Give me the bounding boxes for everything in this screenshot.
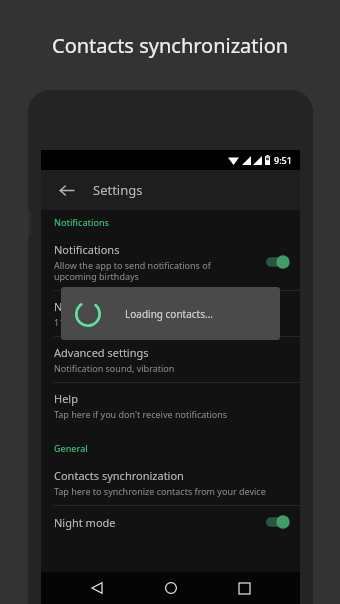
staticText: Notification sound, vibration <box>54 362 175 374</box>
staticText: Loading contacts… <box>125 307 213 321</box>
staticText: Notifications <box>54 242 120 257</box>
staticText: Night mode <box>54 515 116 530</box>
button[interactable]: Home <box>154 572 188 604</box>
staticText: Contacts synchronization <box>52 32 289 59</box>
staticText: General <box>54 442 88 454</box>
staticText: 9:51 <box>274 154 292 166</box>
staticText: Notifications <box>54 216 109 228</box>
staticText: Advanced settings <box>54 345 149 360</box>
staticText: Allow the app to send notifications of u… <box>54 259 211 282</box>
button[interactable]: Navigate up <box>53 177 79 203</box>
staticText: Settings <box>93 181 143 199</box>
button[interactable]: Contacts synchronization <box>41 460 300 505</box>
staticText: Notification time <box>54 299 141 314</box>
button[interactable] <box>264 254 290 270</box>
staticText: Tap here to synchronize contacts from yo… <box>54 485 266 497</box>
button[interactable]: Night mode <box>41 506 300 538</box>
button[interactable]: Notifications <box>41 234 300 290</box>
staticText: Tap here if you don't receive notificati… <box>54 408 228 420</box>
button[interactable]: Recent apps <box>227 572 261 604</box>
button[interactable]: Back <box>80 572 114 604</box>
button[interactable]: Advanced settings <box>41 337 300 382</box>
button[interactable]: Notification time <box>41 291 300 336</box>
button[interactable]: Help <box>41 383 300 428</box>
staticText: Contacts synchronization <box>54 468 184 483</box>
button[interactable] <box>264 514 290 530</box>
staticText: Help <box>54 391 78 406</box>
staticText: 11:00 AM <box>54 316 94 328</box>
